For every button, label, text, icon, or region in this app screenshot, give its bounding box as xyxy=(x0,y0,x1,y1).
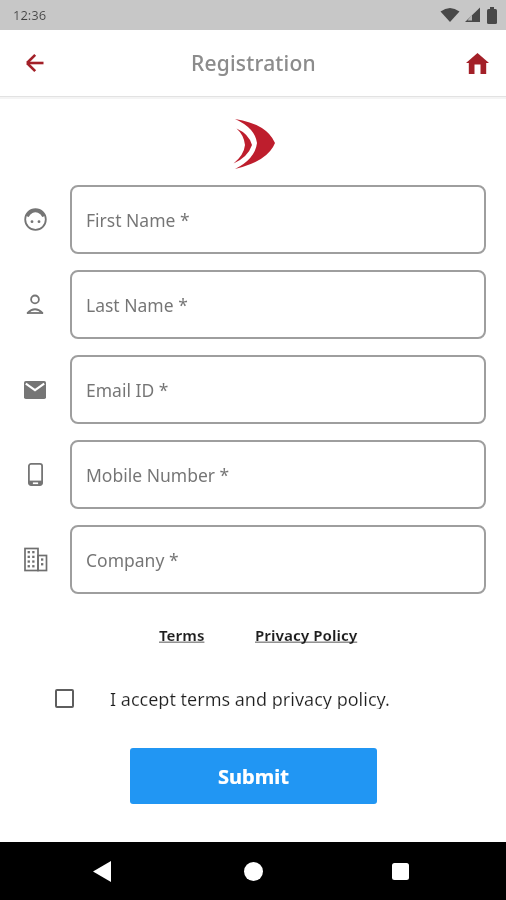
staticText: Submit xyxy=(218,763,289,790)
button[interactable] xyxy=(240,858,266,884)
staticText: Registration xyxy=(191,49,316,78)
button[interactable] xyxy=(89,858,115,884)
button[interactable]: Mobile Number * xyxy=(70,440,486,509)
staticText: Mobile Number * xyxy=(86,463,230,487)
button[interactable] xyxy=(55,689,74,708)
button[interactable]: First Name * xyxy=(70,185,486,254)
staticText: I accept terms and privacy policy. xyxy=(110,687,390,709)
staticText: First Name * xyxy=(86,208,190,232)
button[interactable] xyxy=(21,49,49,77)
staticText: Email ID * xyxy=(86,378,169,402)
staticText: Company * xyxy=(86,548,179,572)
staticText: Privacy Policy xyxy=(255,625,358,645)
button[interactable]: Company * xyxy=(70,525,486,594)
button[interactable]: Privacy Policy xyxy=(255,625,358,645)
button[interactable] xyxy=(463,49,491,77)
button[interactable] xyxy=(387,858,413,884)
button[interactable]: Submit xyxy=(130,748,377,804)
button[interactable]: Terms xyxy=(159,625,205,645)
staticText: Last Name * xyxy=(86,293,188,317)
staticText: 12:36 xyxy=(13,6,47,24)
button[interactable]: Email ID * xyxy=(70,355,486,424)
button[interactable]: Last Name * xyxy=(70,270,486,339)
staticText: Terms xyxy=(159,625,205,645)
